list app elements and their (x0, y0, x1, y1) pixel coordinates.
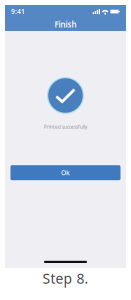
staticText: Ok (61, 168, 70, 177)
staticText: Step 8. (42, 269, 88, 288)
button[interactable]: Ok (10, 165, 120, 180)
staticText: 9:41 (11, 7, 25, 16)
staticText: Finish (54, 19, 76, 30)
staticText: Printed successfully (44, 124, 87, 130)
